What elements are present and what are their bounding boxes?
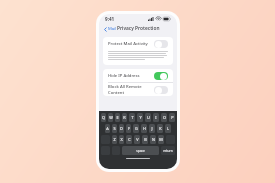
button[interactable]: Back to Mail [103,25,118,33]
button[interactable]: L [165,124,171,133]
staticText: S [113,126,116,131]
button[interactable]: E [115,113,120,122]
button[interactable]: H [141,124,147,133]
button[interactable]: F [126,124,131,133]
button[interactable]: P [169,113,175,122]
button[interactable]: K [157,124,163,133]
button[interactable]: N [150,135,156,144]
staticText: J [151,126,153,131]
staticText: A [106,126,109,131]
button[interactable]: Block All Remote Content [103,83,173,96]
staticText: D [120,126,123,131]
staticText: 9:41 [105,16,115,22]
button[interactable]: R [122,113,127,122]
button[interactable]: C [126,135,132,144]
staticText: T [131,115,134,120]
button[interactable]: G [133,124,139,133]
staticText: G [135,126,138,131]
button[interactable]: T [129,113,135,122]
staticText: H [143,126,146,131]
button[interactable]: U [145,113,151,122]
staticText: L [167,126,169,131]
staticText: K [159,126,162,131]
button[interactable]: Toggle off [154,40,168,48]
staticText: W [109,115,113,120]
staticText: Protect Mail Activity [108,41,154,47]
staticText: C [128,137,131,142]
button[interactable]: O [161,113,167,122]
staticText: E [116,115,119,120]
staticText: Privacy Protection [117,25,160,32]
staticText: M [159,137,163,142]
button[interactable]: Hide IP Address [103,69,173,82]
button[interactable]: I [153,113,159,122]
staticText: return [163,149,173,153]
staticText: B [144,137,147,142]
staticText: Hide IP Address [108,73,154,79]
button[interactable]: V [134,135,140,144]
button[interactable]: A [105,124,110,133]
staticText: Block All Remote Content [108,84,154,96]
button[interactable]: Q [101,113,106,122]
staticText: F [128,126,130,131]
staticText: U [147,115,150,120]
staticText: Mail [108,26,117,32]
button[interactable]: M [158,135,164,144]
button[interactable]: Z [112,135,117,144]
staticText: O [163,115,166,120]
button[interactable]: D [119,124,124,133]
button[interactable]: space [122,146,159,155]
staticText: N [152,137,155,142]
staticText: R [123,115,126,120]
staticText: Q [102,115,105,120]
button[interactable]: S [112,124,117,133]
button[interactable]: W [108,113,113,122]
staticText: I [155,115,157,120]
staticText: Z [113,137,116,142]
button[interactable]: X [119,135,124,144]
staticText: space [136,149,145,153]
button[interactable]: Toggle off [154,86,168,94]
button[interactable]: Protect Mail Activity [103,37,173,50]
staticText: Y [139,115,142,120]
staticText: X [120,137,123,142]
button[interactable]: Y [137,113,143,122]
button[interactable]: B [142,135,148,144]
staticText: P [171,115,174,120]
staticText: V [136,137,139,142]
button[interactable]: J [149,124,155,133]
button[interactable]: return [161,146,175,155]
button[interactable]: Toggle on [154,72,168,80]
